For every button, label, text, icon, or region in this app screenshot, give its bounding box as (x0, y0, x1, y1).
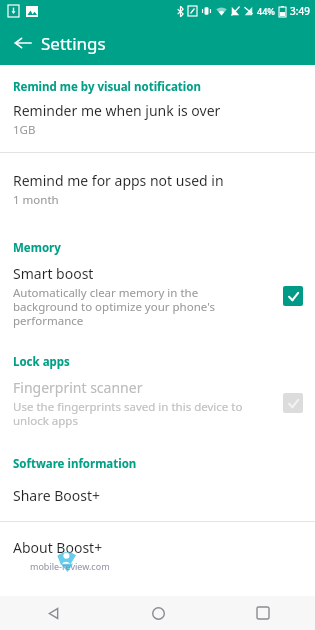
staticText: Automatically clear memory in the backgr… (13, 285, 215, 328)
staticText: Reminder me when junk is over (13, 101, 221, 120)
staticText: 44% (257, 5, 275, 17)
staticText: Smart boost (13, 264, 94, 283)
button[interactable]: Smart boost (0, 256, 315, 336)
button[interactable]: Back (35, 596, 71, 630)
button[interactable]: Remind me for apps not used in (0, 153, 315, 228)
staticText: About Boost+ (13, 538, 103, 557)
staticText: 1GB (13, 122, 36, 138)
staticText: 3:49 (290, 4, 310, 18)
staticText: mobile-review.com (30, 560, 110, 572)
button[interactable]: Reminder me when junk is over (0, 95, 315, 152)
button[interactable]: Back (7, 27, 39, 59)
staticText: Lock apps (13, 354, 315, 370)
staticText: Share Boost+ (13, 486, 101, 505)
staticText: 1 month (13, 192, 59, 208)
button[interactable]: Share Boost+ (0, 472, 315, 521)
button[interactable]: Smart boost enabled (283, 286, 303, 306)
button[interactable]: About Boost+ (0, 522, 315, 573)
staticText: Fingerprint scanner (13, 378, 143, 397)
staticText: Remind me for apps not used in (13, 171, 224, 190)
staticText: Memory (13, 240, 315, 256)
button[interactable]: Home (140, 596, 176, 630)
button[interactable]: Fingerprint scanner (283, 393, 303, 413)
staticText: Use the fingerprints saved in this devic… (13, 399, 243, 428)
staticText: Software information (13, 456, 315, 472)
button[interactable]: Fingerprint scanner (0, 370, 315, 436)
staticText: Remind me by visual notification (13, 79, 315, 95)
button[interactable]: Recent apps (245, 596, 281, 630)
staticText: Settings (41, 32, 106, 55)
